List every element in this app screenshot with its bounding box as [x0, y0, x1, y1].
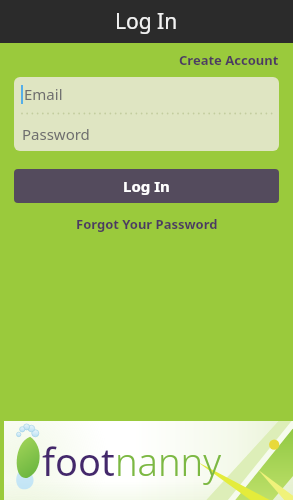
- staticText: Log In: [115, 7, 178, 36]
- staticText: Create Account: [179, 51, 279, 69]
- button[interactable]: Password: [14, 116, 279, 151]
- staticText: Email: [24, 84, 63, 104]
- staticText: Password: [22, 124, 90, 144]
- staticText: foot: [42, 435, 115, 487]
- staticText: Log In: [123, 176, 170, 196]
- button[interactable]: Footnanny logo: [4, 421, 293, 500]
- button[interactable]: Email: [14, 77, 279, 111]
- button[interactable]: Log In: [14, 169, 279, 203]
- button[interactable]: Forgot Your Password: [70, 209, 224, 239]
- staticText: Forgot Your Password: [76, 215, 218, 233]
- staticText: nanny: [115, 435, 222, 487]
- button[interactable]: Create Account: [175, 47, 283, 73]
